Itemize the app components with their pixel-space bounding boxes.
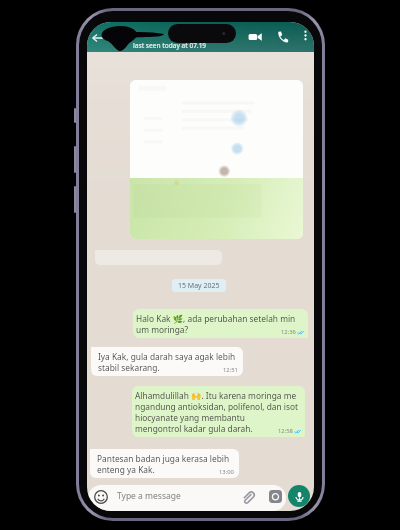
staticText: 12:58 (278, 427, 293, 435)
button[interactable]: Video call (245, 27, 265, 47)
staticText: 12:51 (223, 366, 238, 374)
button[interactable]: Pantesan badan juga kerasa lebih enteng … (90, 449, 239, 478)
staticText: last seen today at 07.19 (133, 41, 207, 50)
button[interactable]: Camera (268, 489, 282, 503)
button[interactable]: Call (272, 27, 292, 47)
button[interactable]: Emoji (88, 485, 286, 511)
staticText: 13:00 (219, 468, 234, 476)
button[interactable]: Emoji (93, 489, 108, 504)
staticText: Halo Kak 🌿, ada perubahan setelah min um… (136, 313, 296, 335)
staticText: Alhamdulillah 🙌. Itu karena moringa me n… (135, 390, 299, 434)
staticText: 12:36 (281, 328, 296, 336)
button[interactable]: Iya Kak, gula darah saya agak lebih stab… (91, 347, 243, 376)
staticText: Type a message (117, 490, 181, 502)
button[interactable]: Voice message (288, 485, 310, 507)
button[interactable]: Halo Kak 🌿, ada perubahan setelah min um… (133, 309, 308, 338)
staticText: 15 May 2025 (178, 281, 220, 291)
staticText: Iya Kak, gula darah saya agak lebih stab… (98, 351, 236, 373)
button[interactable]: Attach (240, 489, 255, 504)
button[interactable]: Alhamdulillah 🙌. Itu karena moringa me n… (132, 386, 305, 437)
button[interactable]: Photo (130, 80, 303, 239)
button[interactable]: More options (297, 27, 313, 43)
button[interactable]: Back (88, 28, 108, 48)
staticText: Pantesan badan juga kerasa lebih enteng … (97, 453, 230, 475)
button[interactable]: 15 May 2025 (172, 279, 226, 292)
